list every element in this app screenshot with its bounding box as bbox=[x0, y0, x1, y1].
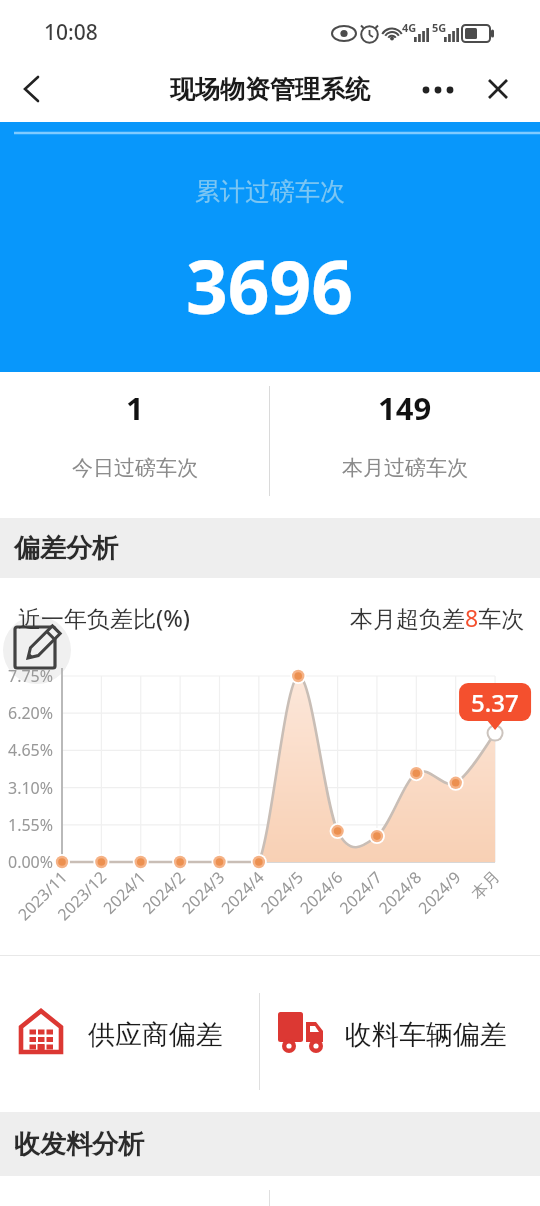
staticText: 本月超负差8车次 bbox=[350, 602, 525, 633]
staticText: 1 bbox=[126, 387, 144, 429]
staticText: 5G bbox=[432, 20, 447, 35]
staticText: 10:08 bbox=[44, 18, 98, 47]
staticText: 收料车辆偏差 bbox=[345, 1018, 507, 1052]
staticText: 3696 bbox=[186, 236, 354, 335]
staticText: 本月过磅车次 bbox=[342, 455, 468, 481]
staticText: 4G bbox=[402, 20, 417, 35]
staticText: 偏差分析 bbox=[14, 532, 118, 565]
button[interactable]: 149 bbox=[270, 372, 540, 518]
staticText: 现场物资管理系统 bbox=[170, 74, 370, 105]
button[interactable]: 收料车辆偏差 bbox=[270, 956, 540, 1105]
staticText: 149 bbox=[378, 387, 432, 429]
staticText: 今日过磅车次 bbox=[72, 455, 198, 481]
staticText: 收发料分析 bbox=[14, 1128, 144, 1161]
button[interactable] bbox=[10, 65, 54, 113]
staticText: 供应商偏差 bbox=[88, 1018, 223, 1052]
staticText: 近一年负差比(%) bbox=[18, 602, 190, 633]
button[interactable]: 1 bbox=[0, 372, 270, 518]
button[interactable] bbox=[3, 616, 71, 684]
staticText: 累计过磅车次 bbox=[195, 176, 345, 207]
button[interactable]: 供应商偏差 bbox=[0, 956, 270, 1105]
button[interactable] bbox=[476, 68, 522, 110]
button[interactable] bbox=[414, 68, 462, 110]
